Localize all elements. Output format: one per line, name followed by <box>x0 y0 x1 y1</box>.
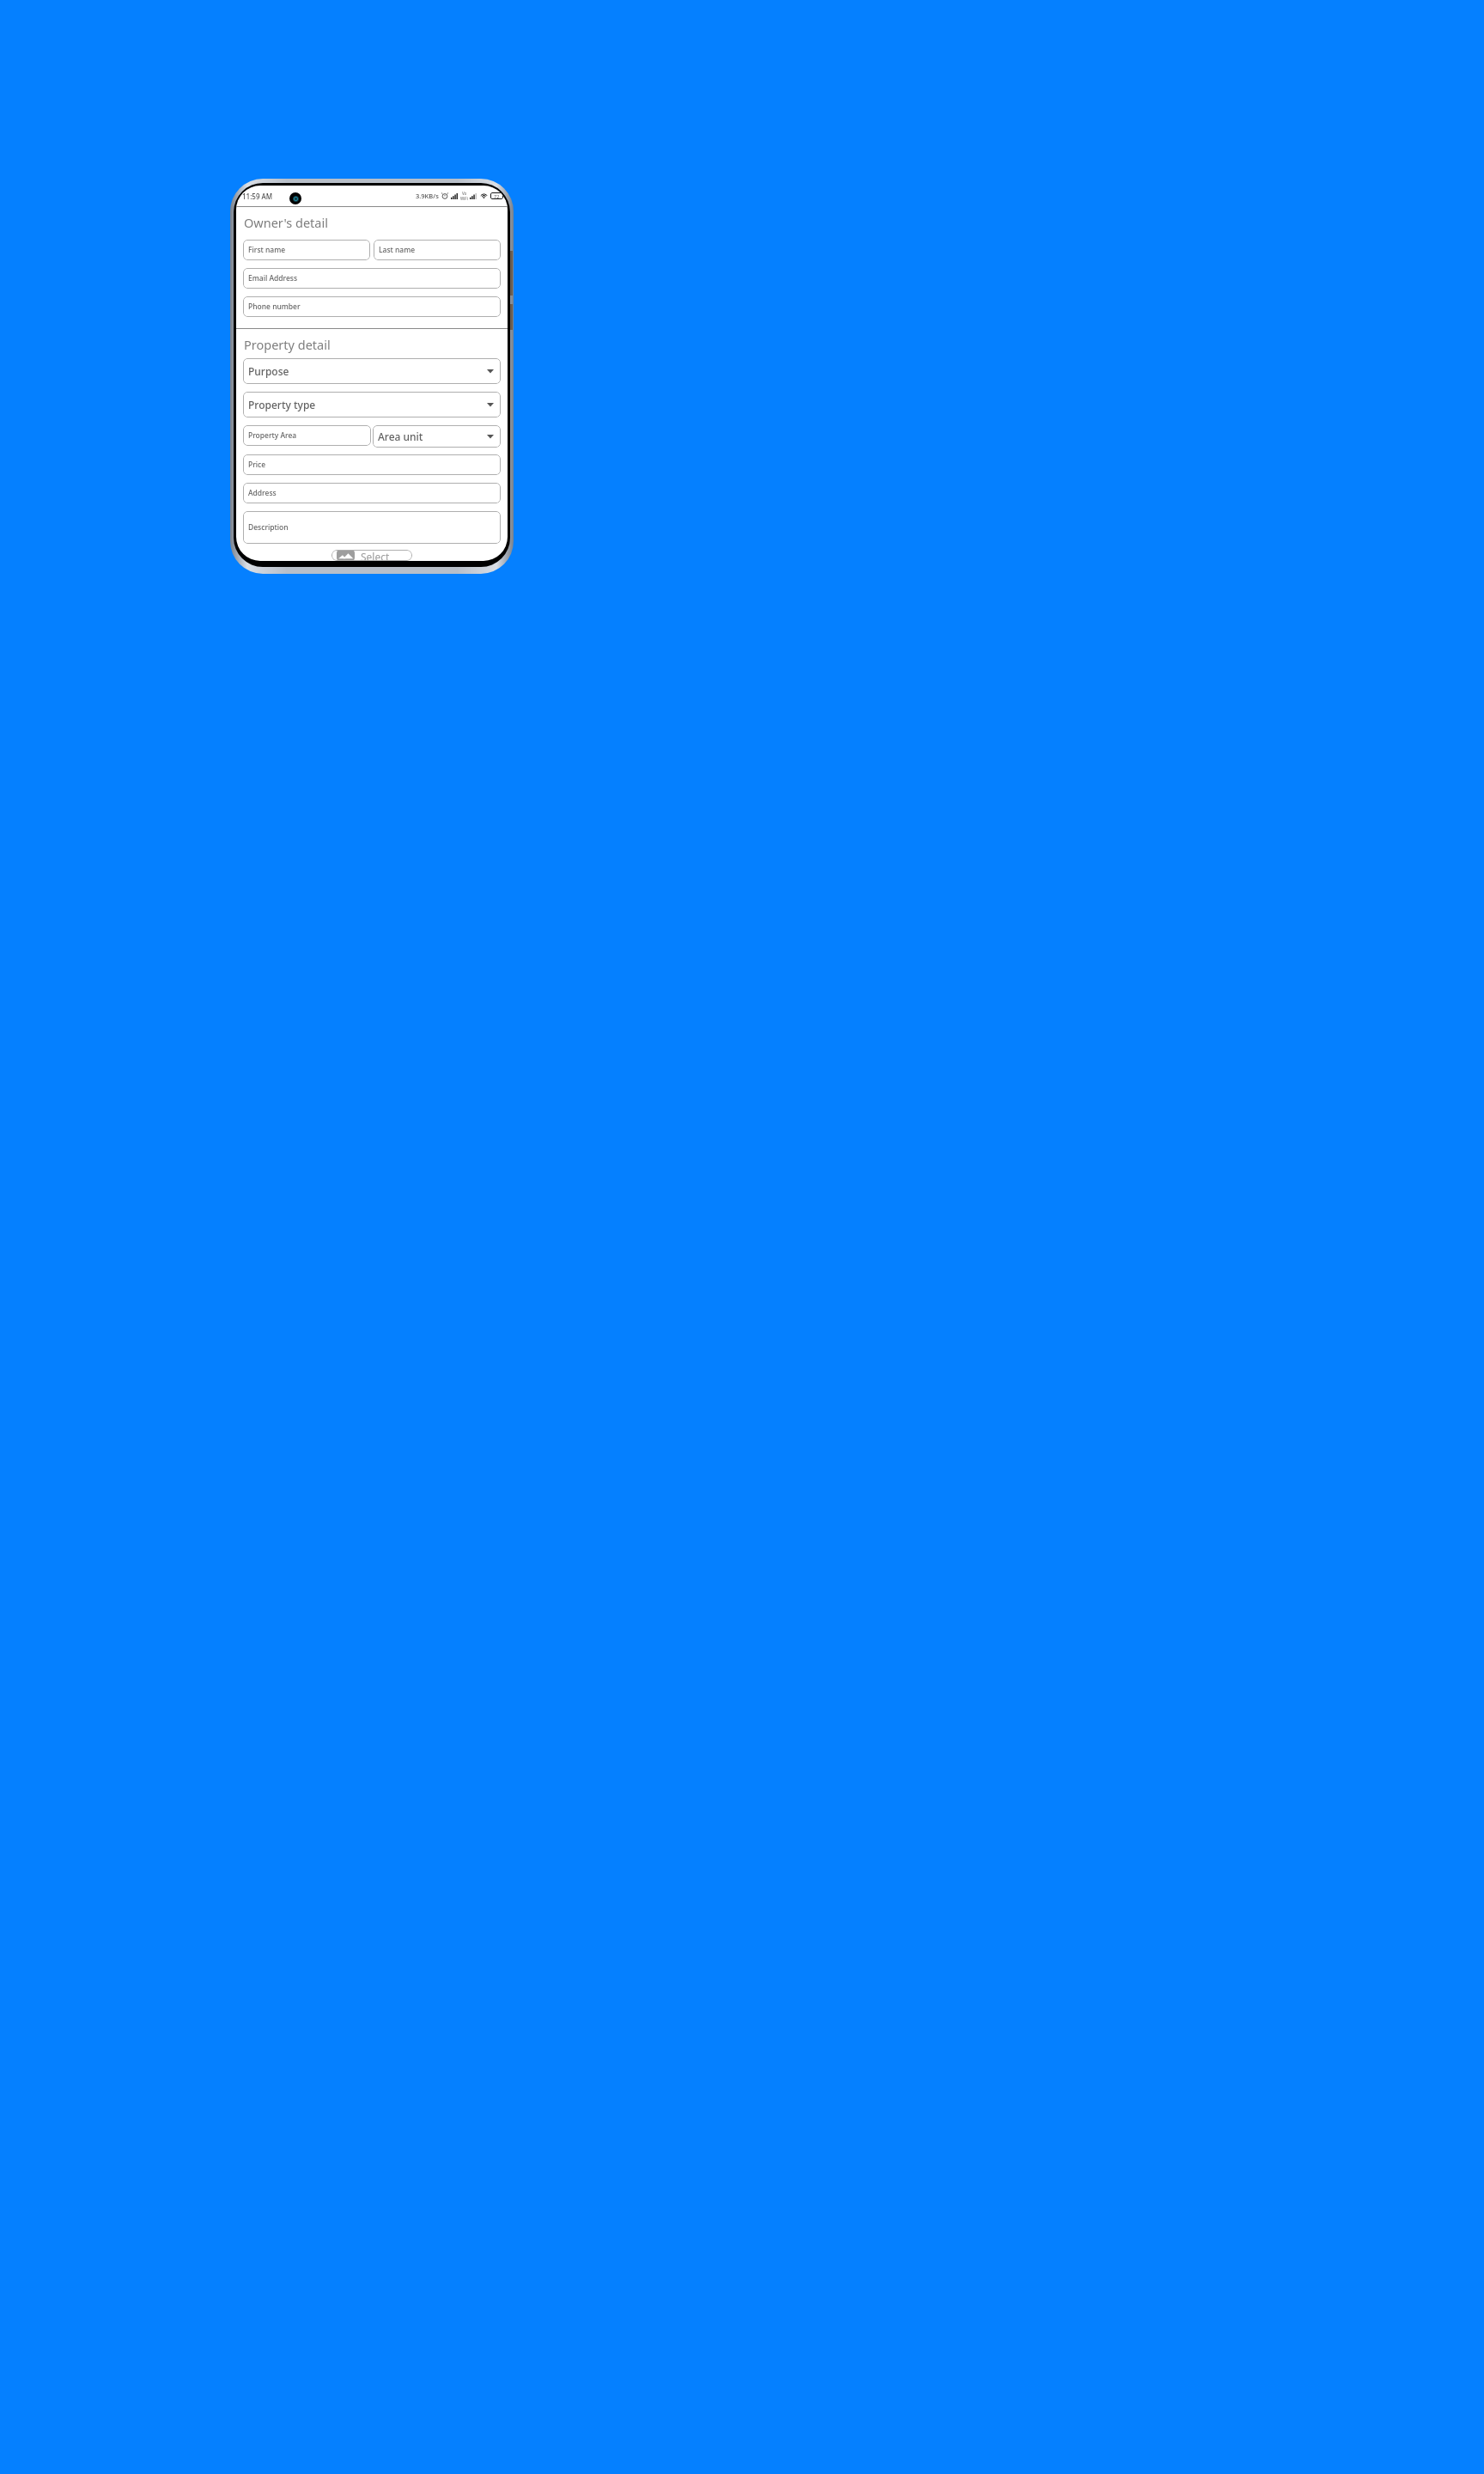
staticText: 72 <box>494 193 500 199</box>
staticText: Description <box>248 522 289 533</box>
button[interactable]: Property type <box>243 392 501 417</box>
staticText: First name <box>248 245 286 255</box>
staticText: Email Address <box>248 273 298 283</box>
button[interactable]: Area unit <box>373 425 501 448</box>
staticText: Phone number <box>248 302 301 312</box>
button[interactable]: Phone number <box>243 296 501 317</box>
button[interactable]: First name <box>243 240 370 260</box>
staticText: 3.9KB/s <box>416 192 439 200</box>
staticText: 11:59 AM <box>242 192 273 201</box>
staticText: Property type <box>248 398 316 411</box>
staticText: Last name <box>379 245 416 255</box>
staticText: Property detail <box>244 336 331 353</box>
button[interactable]: Last name <box>374 240 501 260</box>
button[interactable]: Address <box>243 483 501 503</box>
staticText: Area unit <box>378 430 423 443</box>
button[interactable]: Price <box>243 454 501 475</box>
staticText: Vo <box>462 191 467 196</box>
staticText: Purpose <box>248 364 289 378</box>
button[interactable]: Property Area <box>243 425 371 446</box>
button[interactable]: Select Images <box>331 550 412 561</box>
button[interactable]: Email Address <box>243 268 501 289</box>
staticText: Owner's detail <box>244 214 328 231</box>
staticText: WiFi <box>460 196 468 201</box>
button[interactable]: Description <box>243 511 501 544</box>
staticText: Property Area <box>248 430 297 441</box>
staticText: Select Images <box>361 550 407 561</box>
staticText: Address <box>248 488 277 498</box>
button[interactable]: Purpose <box>243 358 501 384</box>
staticText: Price <box>248 460 266 470</box>
